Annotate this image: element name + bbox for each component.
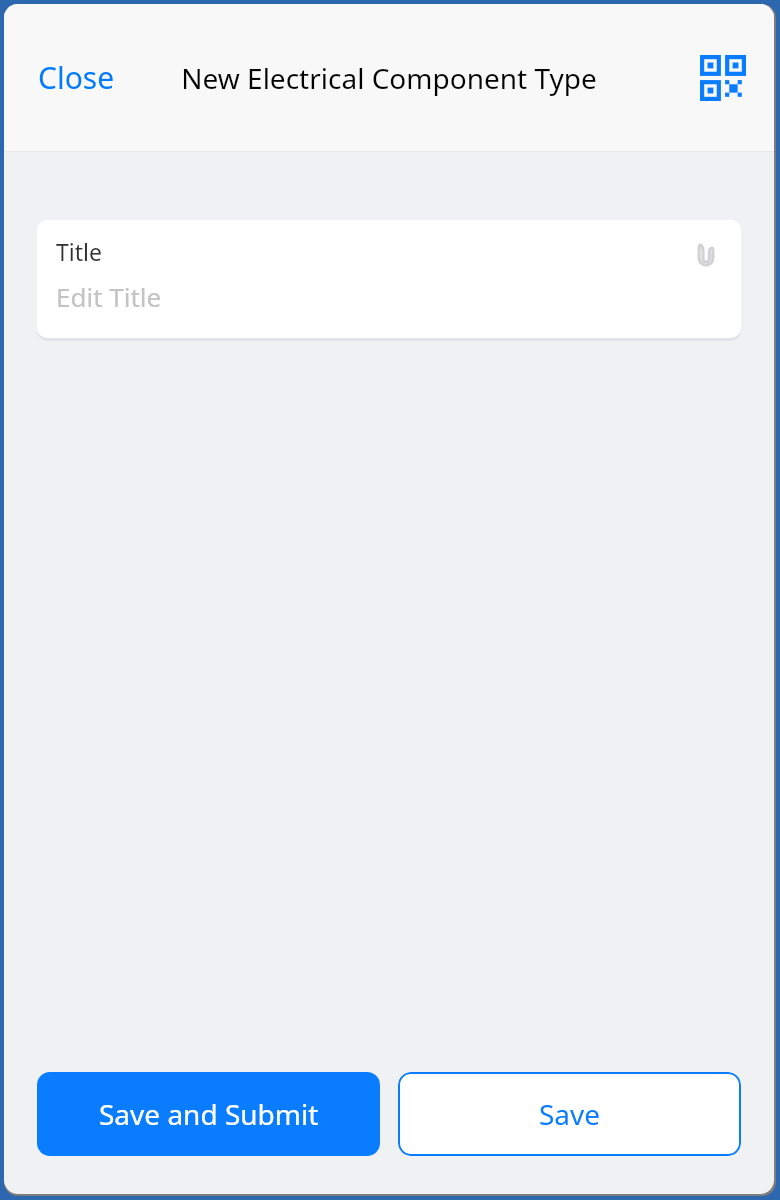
- staticText: New Electrical Component Type: [169, 59, 609, 97]
- button[interactable]: Close: [20, 47, 133, 108]
- staticText: Save: [539, 1095, 601, 1133]
- button[interactable]: Attach file: [681, 234, 731, 284]
- staticText: Title: [56, 236, 102, 267]
- staticText: Save and Submit: [99, 1095, 319, 1133]
- button[interactable]: Scan QR code: [688, 43, 758, 113]
- button[interactable]: Title: [37, 220, 741, 338]
- button[interactable]: Save: [398, 1072, 741, 1156]
- button[interactable]: Save and Submit: [37, 1072, 380, 1156]
- staticText: Edit Title: [56, 279, 162, 314]
- staticText: Close: [38, 57, 115, 98]
